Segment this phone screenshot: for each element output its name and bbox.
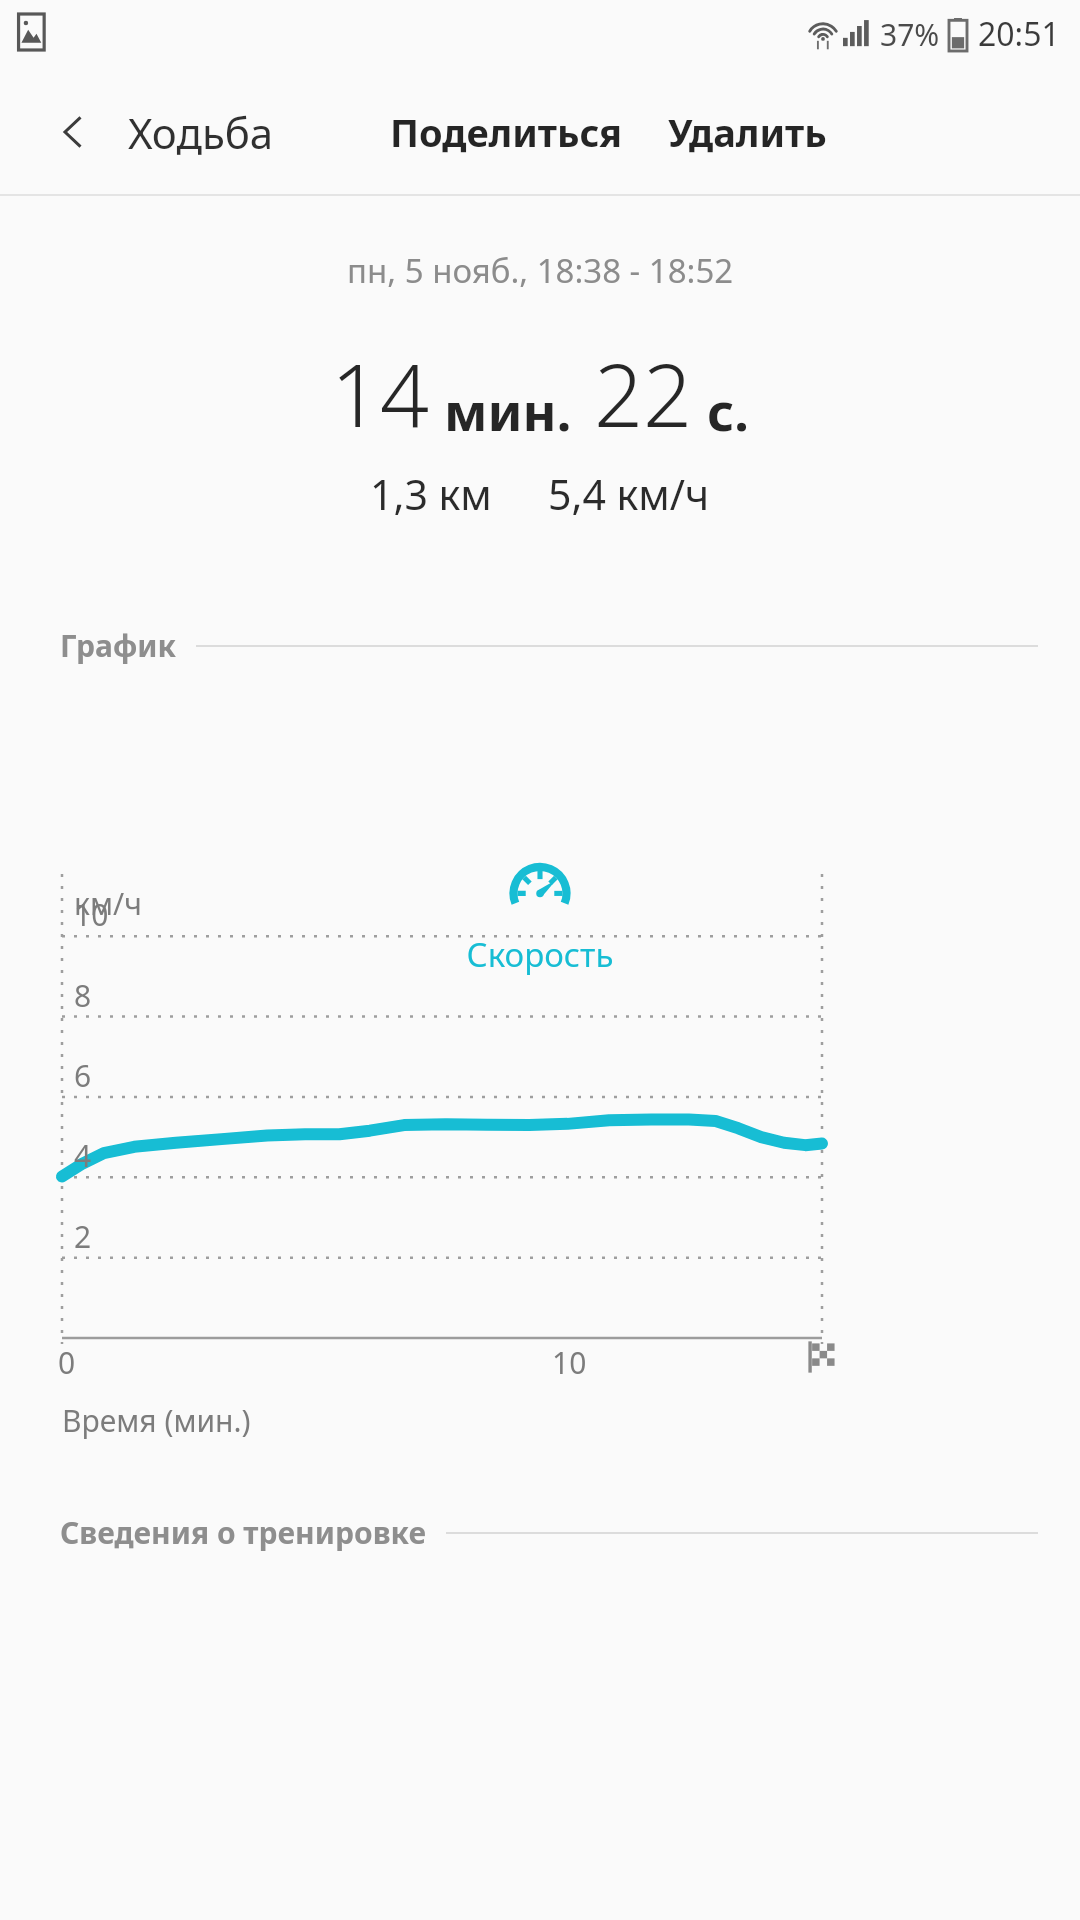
staticText: 5,4 км/ч: [548, 466, 710, 522]
staticText: 8: [74, 975, 92, 1016]
staticText: 6: [74, 1055, 92, 1096]
staticText: 10: [74, 894, 109, 935]
staticText: км/ч: [74, 883, 142, 924]
button[interactable]: Скорость: [506, 856, 574, 924]
staticText: с.: [707, 375, 749, 446]
other: Финиш: [806, 1340, 840, 1374]
staticText: 37%: [880, 14, 940, 55]
staticText: 2: [74, 1216, 92, 1257]
staticText: Скорость: [0, 932, 1080, 977]
staticText: Сведения о тренировке: [60, 1512, 426, 1553]
button[interactable]: Назад: [28, 68, 118, 196]
button[interactable]: Поделиться: [390, 68, 623, 196]
staticText: 20:51: [978, 12, 1060, 56]
staticText: 22: [594, 335, 693, 452]
staticText: 10: [552, 1342, 587, 1383]
staticText: мин.: [444, 375, 572, 446]
staticText: пн, 5 нояб., 18:38 - 18:52: [347, 248, 734, 293]
staticText: 0: [58, 1342, 76, 1383]
staticText: Ходьба: [128, 104, 274, 161]
staticText: Время (мин.): [62, 1400, 251, 1441]
staticText: Удалить: [668, 106, 827, 158]
staticText: 14: [331, 335, 430, 452]
button[interactable]: Удалить: [668, 68, 827, 196]
staticText: График: [60, 625, 176, 666]
staticText: 1,3 км: [370, 466, 492, 522]
staticText: 4: [74, 1135, 92, 1176]
staticText: Поделиться: [390, 106, 623, 158]
button[interactable]: Ходьба: [128, 68, 274, 196]
